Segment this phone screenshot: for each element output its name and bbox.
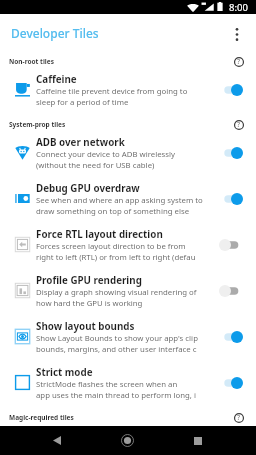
staticText: Force RTL layout direction: [36, 228, 163, 241]
staticText: Connect your device to ADB wirelessly: [36, 149, 175, 160]
button[interactable]: Show layout bounds: [0, 317, 256, 363]
button[interactable]: Toggle on: [219, 192, 243, 206]
button[interactable]: Caffeine: [0, 70, 256, 116]
staticText: See when and where an app asking system …: [36, 195, 203, 206]
staticText: System-prop tiles: [9, 120, 66, 129]
staticText: Show layout bounds: [36, 320, 135, 333]
button[interactable]: More options: [222, 19, 252, 49]
staticText: StrictMode flashes the screen when an: [36, 379, 178, 390]
button[interactable]: Help: [230, 116, 247, 133]
staticText: how hard the GPU is working: [36, 298, 143, 309]
staticText: ?: [237, 57, 241, 67]
button[interactable]: Back: [44, 428, 69, 453]
button[interactable]: Force RTL layout direction: [0, 225, 256, 271]
button[interactable]: Toggle on: [219, 146, 243, 160]
staticText: app uses the main thread to perform long…: [36, 390, 196, 401]
button[interactable]: ADB over network: [0, 133, 256, 179]
staticText: Caffeine: [36, 73, 77, 86]
staticText: Display a graph showing visual rendering…: [36, 287, 197, 298]
button[interactable]: Recent apps: [185, 428, 210, 453]
button[interactable]: Toggle on: [219, 376, 243, 390]
button[interactable]: Help: [230, 409, 247, 426]
staticText: 8:00: [229, 1, 248, 14]
button[interactable]: Debug GPU overdraw: [0, 179, 256, 225]
staticText: Debug GPU overdraw: [36, 182, 140, 195]
staticText: ADB over network: [36, 136, 125, 149]
button[interactable]: Toggle on: [219, 83, 243, 97]
button[interactable]: Help: [230, 53, 247, 70]
staticText: bounds, margins, and other user interfac…: [36, 344, 197, 355]
staticText: draw something on top of something else: [36, 206, 190, 217]
staticText: (without the need for USB cable): [36, 160, 155, 171]
staticText: Developer Tiles: [11, 25, 99, 41]
staticText: ?: [237, 413, 241, 423]
button[interactable]: Toggle off: [219, 284, 243, 298]
button[interactable]: Home: [115, 428, 140, 453]
staticText: Strict mode: [36, 366, 93, 379]
staticText: Magic-required tiles: [9, 413, 74, 422]
button[interactable]: Toggle on: [219, 330, 243, 344]
staticText: Non-root tiles: [9, 57, 54, 66]
staticText: Profile GPU rendering: [36, 274, 142, 287]
button[interactable]: Toggle off: [219, 238, 243, 252]
staticText: ?: [237, 120, 241, 130]
button[interactable]: Profile GPU rendering: [0, 271, 256, 317]
staticText: Forces screen layout direction to be fro…: [36, 241, 186, 252]
staticText: Caffeine tile prevent device from going …: [36, 86, 188, 97]
staticText: sleep for a period of time: [36, 97, 129, 108]
staticText: Show Layout Bounds to show your app's cl…: [36, 333, 198, 344]
button[interactable]: Strict mode: [0, 363, 256, 409]
staticText: right to left (RTL) or from left to righ…: [36, 252, 196, 263]
